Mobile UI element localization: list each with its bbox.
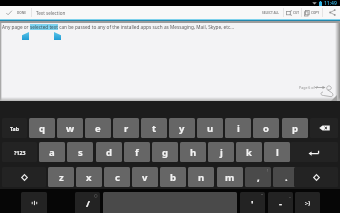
button[interactable]: o: [253, 118, 279, 138]
staticText: b: [170, 171, 177, 184]
staticText: /: [86, 197, 90, 210]
button[interactable]: z: [48, 167, 74, 187]
staticText: c: [115, 171, 120, 184]
staticText: ': [251, 197, 254, 210]
button[interactable]: DONE: [0, 6, 31, 19]
button[interactable]: ,: [245, 167, 271, 187]
button[interactable]: y: [169, 118, 195, 138]
staticText: q: [39, 122, 46, 135]
button[interactable]: w: [57, 118, 83, 138]
button[interactable]: a: [39, 142, 65, 162]
button[interactable]: q: [29, 118, 55, 138]
staticText: ,: [257, 171, 260, 184]
button[interactable]: Share: [324, 6, 340, 19]
staticText: j: [220, 146, 223, 159]
staticText: u: [207, 122, 214, 135]
button[interactable]: x: [76, 167, 102, 187]
staticText: can be passed to any of the installed ap…: [58, 24, 234, 30]
button[interactable]: .: [273, 167, 299, 187]
staticText: w: [66, 122, 75, 135]
button[interactable]: l: [264, 142, 290, 162]
staticText: SELECT ALL: [262, 11, 280, 15]
staticText: g: [162, 146, 169, 159]
staticText: k: [246, 146, 252, 159]
button[interactable]: Settings: [21, 192, 47, 213]
staticText: ○: [94, 193, 98, 198]
button[interactable]: Tab: [2, 118, 27, 138]
staticText: t: [152, 122, 157, 135]
staticText: Page 6 of 7: [299, 85, 318, 90]
button[interactable]: COPY: [303, 6, 321, 19]
button[interactable]: f: [124, 142, 150, 162]
button[interactable]: Backspace: [310, 118, 338, 138]
button[interactable]: v: [132, 167, 158, 187]
button[interactable]: t: [141, 118, 167, 138]
button[interactable]: p: [282, 118, 308, 138]
button[interactable]: s: [67, 142, 93, 162]
staticText: Any page or: [2, 24, 30, 30]
staticText: -: [279, 197, 283, 210]
staticText: d: [106, 146, 113, 159]
button[interactable]: n: [188, 167, 214, 187]
button[interactable]: m: [217, 167, 243, 187]
button[interactable]: Shift: [2, 167, 46, 187]
staticText: s: [78, 146, 83, 159]
button[interactable]: d: [96, 142, 122, 162]
button[interactable]: Enter: [290, 142, 338, 162]
staticText: x: [86, 171, 92, 184]
staticText: r: [124, 122, 129, 135]
button[interactable]: g: [152, 142, 178, 162]
button[interactable]: k: [236, 142, 262, 162]
staticText: a: [49, 146, 55, 159]
staticText: z: [59, 171, 64, 184]
staticText: o: [263, 122, 269, 135]
button[interactable]: c: [104, 167, 130, 187]
staticText: v: [142, 171, 148, 184]
button[interactable]: ?123: [2, 142, 37, 162]
staticText: DONE: [17, 11, 26, 15]
button[interactable]: CUT: [284, 6, 301, 19]
button[interactable]: ': [240, 192, 265, 213]
staticText: ": [261, 193, 263, 198]
staticText: f: [135, 146, 139, 159]
staticText: CUT: [293, 11, 300, 15]
button[interactable]: -: [268, 192, 293, 213]
staticText: y: [179, 122, 185, 135]
staticText: l: [276, 146, 279, 159]
button[interactable]: b: [160, 167, 186, 187]
button[interactable]: r: [113, 118, 139, 138]
staticText: COPY: [311, 11, 320, 15]
staticText: ?123: [14, 149, 26, 156]
staticText: Tab: [10, 125, 19, 132]
staticText: selected text: [30, 24, 58, 30]
button[interactable]: u: [197, 118, 223, 138]
staticText: 11:49: [324, 0, 337, 6]
staticText: e: [95, 122, 101, 135]
button[interactable]: SELECT ALL: [258, 6, 283, 19]
button[interactable]: /: [75, 192, 100, 213]
button[interactable]: e: [85, 118, 111, 138]
staticText: h: [190, 146, 197, 159]
button[interactable]: h: [180, 142, 206, 162]
staticText: n: [198, 171, 205, 184]
staticText: m: [225, 171, 235, 184]
staticText: p: [292, 122, 299, 135]
button[interactable]: :-): [295, 192, 320, 213]
button[interactable]: j: [208, 142, 234, 162]
button[interactable]: i: [225, 118, 251, 138]
staticText: _: [289, 193, 291, 198]
staticText: !: [267, 168, 269, 173]
staticText: .: [285, 171, 288, 184]
staticText: Text selection: [36, 10, 66, 16]
staticText: :-): [305, 199, 311, 207]
button[interactable]: Shift: [294, 167, 338, 187]
staticText: i: [237, 122, 240, 135]
